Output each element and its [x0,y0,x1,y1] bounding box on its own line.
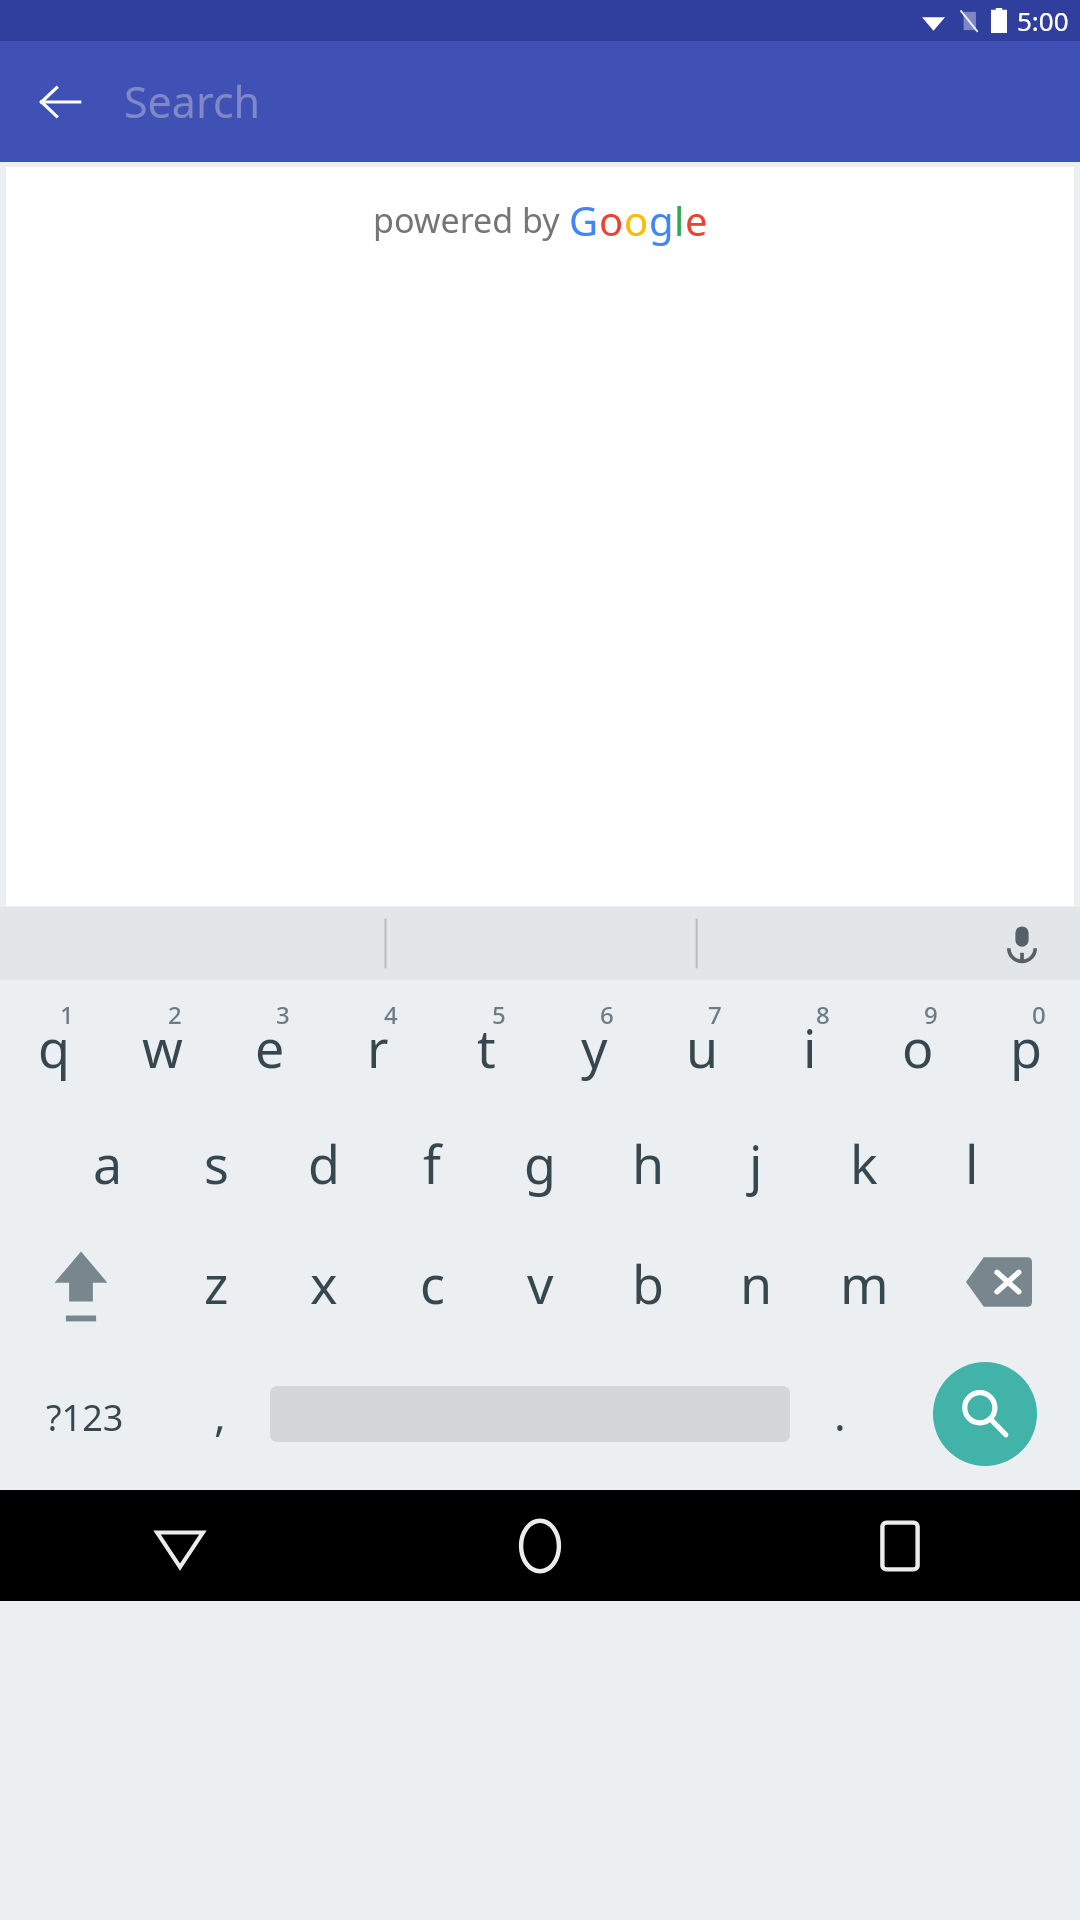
button[interactable]: j [702,1102,810,1224]
button[interactable]: 3 [216,980,324,1102]
button[interactable]: Recents [720,1490,1080,1601]
staticText: o [902,1012,934,1083]
staticText: 5 [492,998,506,1031]
staticText: 1 [60,998,74,1031]
button[interactable]: g [486,1102,594,1224]
staticText: 5:00 [1017,3,1069,38]
staticText: v [527,1248,554,1319]
button[interactable]: z [162,1224,270,1354]
button[interactable]: 1 [0,980,108,1102]
staticText: q [38,1012,70,1083]
button[interactable]: x [270,1224,378,1354]
staticText: , [214,1384,226,1444]
button[interactable]: 2 [108,980,216,1102]
button[interactable]: 8 [756,980,864,1102]
button[interactable]: Back [0,1490,360,1601]
button[interactable]: h [594,1102,702,1224]
staticText: r [367,1012,389,1083]
staticText: m [840,1248,889,1319]
button[interactable]: 7 [648,980,756,1102]
staticText: a [93,1128,123,1199]
button[interactable]: ?123 [0,1354,170,1490]
staticText: 7 [708,998,722,1031]
staticText: t [477,1012,496,1083]
staticText: ?123 [46,1393,124,1442]
staticText: d [308,1128,340,1199]
button[interactable]: l [918,1102,1026,1224]
staticText: G [569,193,599,247]
staticText: l [674,193,685,247]
staticText: c [420,1248,445,1319]
button[interactable]: Home [360,1490,720,1601]
staticText: e [685,193,708,247]
button[interactable]: Search [890,1354,1080,1490]
staticText: 8 [816,998,830,1031]
button[interactable]: Shift [0,1224,162,1354]
button[interactable]: Space [270,1354,790,1490]
staticText: w [142,1012,183,1083]
staticText: 6 [600,998,614,1031]
staticText: o [599,193,624,247]
staticText: y [581,1012,608,1083]
button[interactable]: . [790,1354,890,1490]
staticText: l [965,1128,979,1199]
staticText: Search [124,72,261,131]
staticText: x [310,1248,338,1319]
staticText: 3 [276,998,290,1031]
staticText: e [255,1012,285,1083]
button[interactable]: 6 [540,980,648,1102]
button[interactable]: m [810,1224,918,1354]
staticText: g [649,193,674,247]
button[interactable]: n [702,1224,810,1354]
button[interactable]: 9 [864,980,972,1102]
button[interactable]: b [594,1224,702,1354]
button[interactable]: k [810,1102,918,1224]
button[interactable]: 4 [324,980,432,1102]
staticText: 2 [168,998,182,1031]
staticText: i [803,1012,817,1083]
staticText: u [686,1012,719,1083]
button[interactable]: f [378,1102,486,1224]
staticText: o [624,193,649,247]
button[interactable]: , [170,1354,270,1490]
button[interactable]: v [486,1224,594,1354]
button[interactable]: 0 [972,980,1080,1102]
staticText: 0 [1032,998,1046,1031]
staticText: g [524,1128,556,1199]
staticText: p [1010,1012,1042,1083]
button[interactable]: d [270,1102,378,1224]
button[interactable]: Back [22,64,98,140]
button[interactable]: Voice input [986,908,1058,980]
staticText: 4 [384,998,398,1031]
staticText: b [632,1248,664,1319]
staticText: powered by [373,197,569,243]
staticText: s [204,1128,229,1199]
staticText: n [740,1248,773,1319]
button[interactable]: Search [124,41,1080,162]
staticText: 9 [924,998,938,1031]
button[interactable]: c [378,1224,486,1354]
staticText: z [204,1248,229,1319]
staticText: k [850,1128,878,1199]
staticText: j [749,1128,763,1199]
button[interactable]: 5 [432,980,540,1102]
staticText: f [423,1128,441,1199]
button[interactable]: Backspace [918,1224,1080,1354]
button[interactable]: a [54,1102,162,1224]
staticText: h [632,1128,665,1199]
button[interactable]: s [162,1102,270,1224]
staticText: . [834,1384,846,1444]
